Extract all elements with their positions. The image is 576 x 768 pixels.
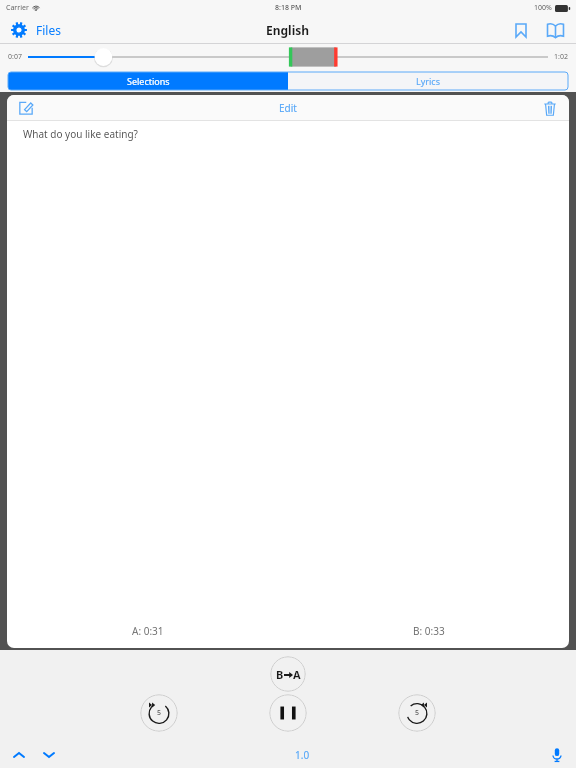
button[interactable]: Library <box>542 17 568 43</box>
button[interactable]: Previous <box>8 744 30 766</box>
staticText: 0:07 <box>8 52 22 62</box>
button[interactable]: New selection <box>15 97 37 119</box>
button[interactable]: Delete <box>539 97 561 119</box>
button[interactable]: Settings <box>8 19 30 41</box>
staticText: Lyrics <box>416 75 440 87</box>
staticText: Files <box>36 22 61 38</box>
button[interactable]: Bookmark <box>508 17 534 43</box>
button[interactable]: Selections <box>8 72 288 90</box>
button[interactable]: Edit <box>271 97 305 119</box>
button[interactable]: 1.0 <box>289 745 316 765</box>
staticText: 100% <box>534 3 552 13</box>
staticText: English <box>266 22 310 38</box>
button[interactable]: Next <box>38 744 60 766</box>
staticText: A <box>293 667 301 682</box>
button[interactable]: Rewind 5 seconds <box>140 694 178 732</box>
button[interactable]: Record <box>546 744 568 766</box>
button[interactable]: Files <box>34 17 63 43</box>
button[interactable]: B <box>270 656 306 692</box>
staticText: B <box>276 667 284 682</box>
staticText: 5 <box>157 708 162 718</box>
staticText: A: 0:31 <box>132 624 164 638</box>
staticText: Selections <box>127 75 170 87</box>
staticText: Edit <box>279 101 297 115</box>
button[interactable]: Forward 5 seconds <box>398 694 436 732</box>
staticText: Carrier <box>6 3 29 13</box>
staticText: 1.0 <box>295 748 310 762</box>
button[interactable]: Lyrics <box>288 72 568 90</box>
staticText: B: 0:33 <box>413 624 445 638</box>
staticText: What do you like eating? <box>23 127 138 141</box>
button[interactable]: Pause <box>269 694 307 732</box>
staticText: 1:02 <box>554 52 568 62</box>
staticText: 8:18 PM <box>275 3 302 13</box>
button[interactable]: What do you like eating? <box>7 121 569 147</box>
staticText: 5 <box>415 708 420 718</box>
button[interactable] <box>28 45 548 69</box>
